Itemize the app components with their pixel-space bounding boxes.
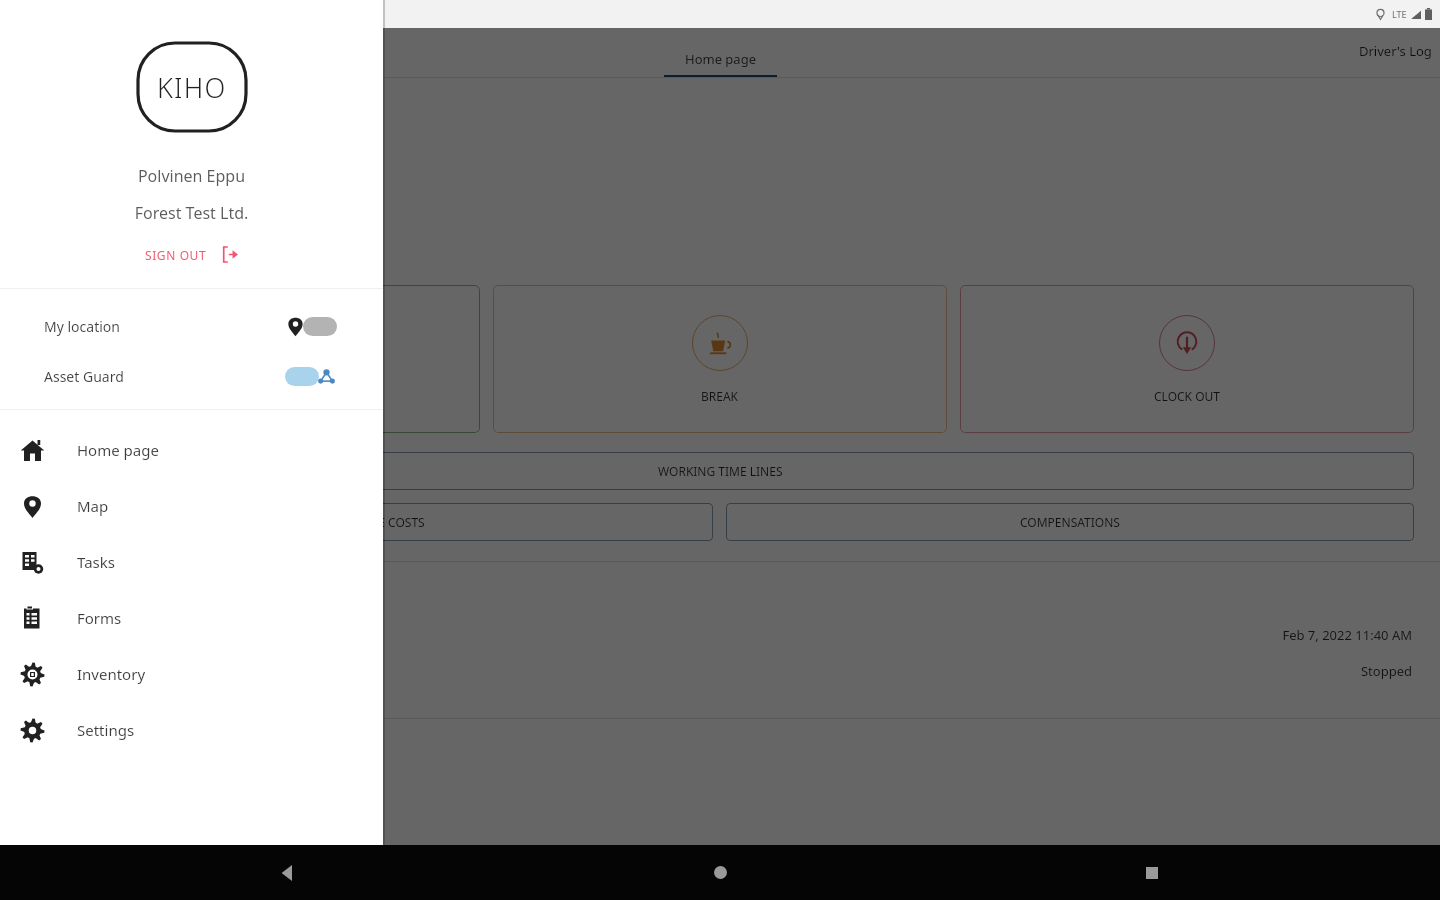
button[interactable]: Asset Guard (0, 359, 383, 393)
other: My location off (285, 315, 337, 337)
button[interactable]: Map (0, 478, 383, 534)
staticText: Home page (685, 50, 756, 68)
button[interactable]: My location (0, 309, 383, 343)
staticText: Stopped (0, 662, 1412, 680)
button[interactable]: Recent apps (936, 845, 1368, 900)
staticText: SIGN OUT (145, 247, 207, 263)
staticText: Forest Test Ltd. (0, 202, 383, 224)
staticText: BREAK (701, 388, 739, 404)
button[interactable]: Settings (0, 702, 383, 758)
staticText: LTE (1392, 8, 1407, 20)
staticText: ALLOWANCE COSTS (314, 514, 425, 530)
staticText: Tasks (77, 552, 115, 572)
button[interactable]: WORKING TIME LINES (26, 452, 1414, 490)
staticText: My location (44, 317, 120, 336)
staticText: Forms (77, 608, 122, 628)
staticText: Asset Guard (44, 367, 124, 386)
button[interactable]: COMPENSATIONS (726, 503, 1414, 541)
staticText: Map (77, 496, 109, 516)
button[interactable]: Driver's Log (1359, 42, 1432, 60)
button[interactable]: Inventory (0, 646, 383, 702)
button[interactable]: BREAK (493, 285, 947, 433)
button[interactable]: CLOCK IN (26, 285, 480, 433)
button[interactable]: Back (72, 845, 504, 900)
staticText: Feb 7, 2022 11:40 AM (0, 626, 1412, 644)
staticText: CLOCK OUT (1154, 388, 1220, 404)
button[interactable]: Home page (560, 50, 880, 78)
button[interactable]: Tasks (0, 534, 383, 590)
staticText: Inventory (77, 664, 146, 684)
button[interactable]: Forms (0, 590, 383, 646)
button[interactable]: CLOCK OUT (960, 285, 1414, 433)
staticText: WORKING TIME LINES (658, 463, 783, 479)
staticText: Settings (77, 720, 135, 740)
button[interactable]: Home page (0, 422, 383, 478)
staticText: Home page (77, 440, 159, 460)
staticText: COMPENSATIONS (1020, 514, 1120, 530)
staticText: KIHO (157, 69, 227, 106)
button[interactable]: ALLOWANCE COSTS (26, 503, 713, 541)
button[interactable]: SIGN OUT (135, 241, 248, 268)
button[interactable]: Home (504, 845, 936, 900)
other: Asset Guard on (285, 365, 337, 387)
staticText: Polvinen Eppu (0, 165, 383, 187)
